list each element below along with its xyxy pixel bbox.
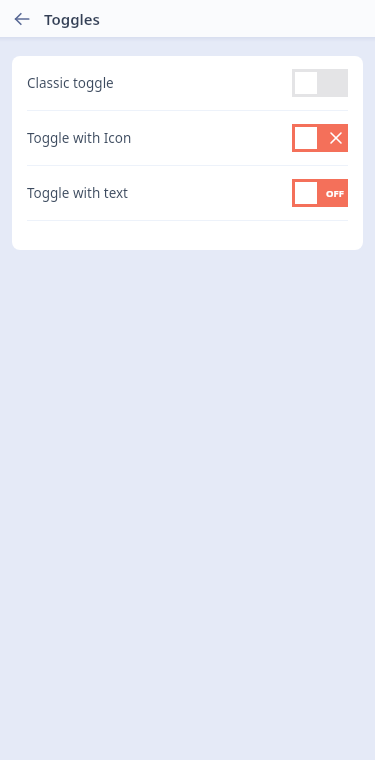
button[interactable]: Toggle (292, 124, 348, 152)
button[interactable]: Classic toggle (12, 56, 363, 110)
button[interactable]: Back (8, 5, 36, 33)
staticText: OFF (326, 187, 344, 200)
staticText: Toggle with text (27, 184, 292, 202)
staticText: Classic toggle (27, 74, 292, 92)
button[interactable]: Toggle (292, 69, 348, 97)
staticText: Toggles (44, 9, 100, 29)
button[interactable]: Toggle with Icon (12, 111, 363, 165)
button[interactable]: Toggle (292, 179, 348, 207)
staticText: Toggle with Icon (27, 129, 292, 147)
button[interactable]: Toggle with text (12, 166, 363, 220)
